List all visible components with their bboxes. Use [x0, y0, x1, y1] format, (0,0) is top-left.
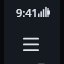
staticText: 9:41 — [16, 5, 38, 20]
button[interactable]: Open navigation menu — [14, 27, 48, 61]
